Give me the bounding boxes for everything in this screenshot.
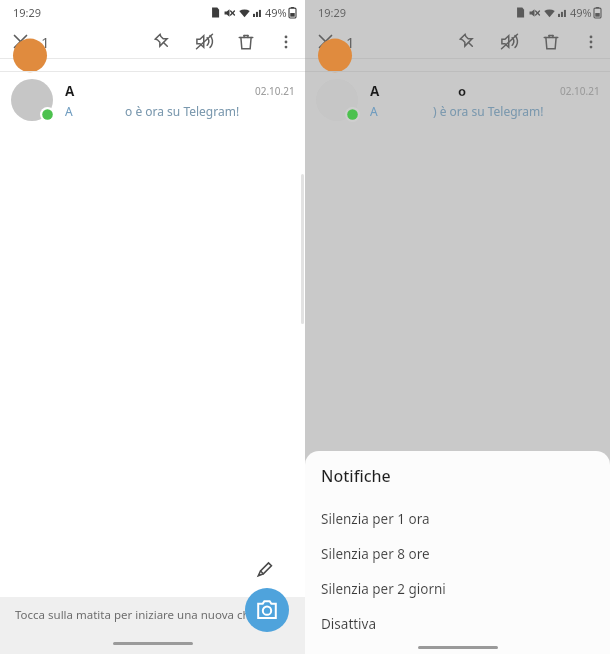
button[interactable]: Altre opzioni: [572, 24, 610, 59]
button[interactable]: Chiudi: [0, 24, 40, 59]
button[interactable]: Fissa: [446, 24, 488, 59]
button[interactable]: A: [0, 72, 305, 128]
staticText: Silenzia per 1 ora: [321, 510, 430, 528]
staticText: A: [370, 82, 380, 100]
staticText: 02.10.21: [560, 84, 600, 98]
button[interactable]: Altre opzioni: [267, 24, 305, 59]
button[interactable]: Fotocamera: [245, 588, 289, 632]
staticText: 19:29: [318, 5, 347, 20]
staticText: 49%: [265, 5, 287, 20]
staticText: 49%: [570, 5, 592, 20]
staticText: A: [65, 103, 73, 119]
staticText: 19:29: [13, 5, 42, 20]
button[interactable]: Chiudi: [305, 24, 345, 59]
staticText: ) è ora su Telegram!: [433, 103, 544, 119]
button[interactable]: A: [305, 72, 610, 128]
button[interactable]: Elimina: [530, 24, 572, 59]
button[interactable]: Silenzia: [488, 24, 530, 59]
staticText: o è ora su Telegram!: [125, 103, 240, 119]
button[interactable]: Disattiva: [305, 606, 610, 641]
staticText: A: [370, 103, 378, 119]
button[interactable]: Silenzia per 2 giorni: [305, 571, 610, 606]
button[interactable]: Nuova chat: [247, 551, 282, 586]
button[interactable]: Silenzia per 8 ore: [305, 536, 610, 571]
staticText: Silenzia per 2 giorni: [321, 580, 446, 598]
staticText: Silenzia per 8 ore: [321, 545, 430, 563]
staticText: o: [458, 82, 467, 100]
staticText: A: [65, 82, 75, 100]
button[interactable]: Silenzia per 1 ora: [305, 501, 610, 536]
button[interactable]: Fissa: [141, 24, 183, 59]
staticText: Tocca sulla matita per iniziare una nuov…: [15, 607, 261, 623]
staticText: Notifiche: [321, 465, 391, 487]
button[interactable]: Elimina: [225, 24, 267, 59]
staticText: 1: [41, 32, 50, 52]
button[interactable]: Silenzia: [183, 24, 225, 59]
staticText: 02.10.21: [255, 84, 295, 98]
staticText: 1: [346, 32, 355, 52]
staticText: Disattiva: [321, 615, 377, 633]
